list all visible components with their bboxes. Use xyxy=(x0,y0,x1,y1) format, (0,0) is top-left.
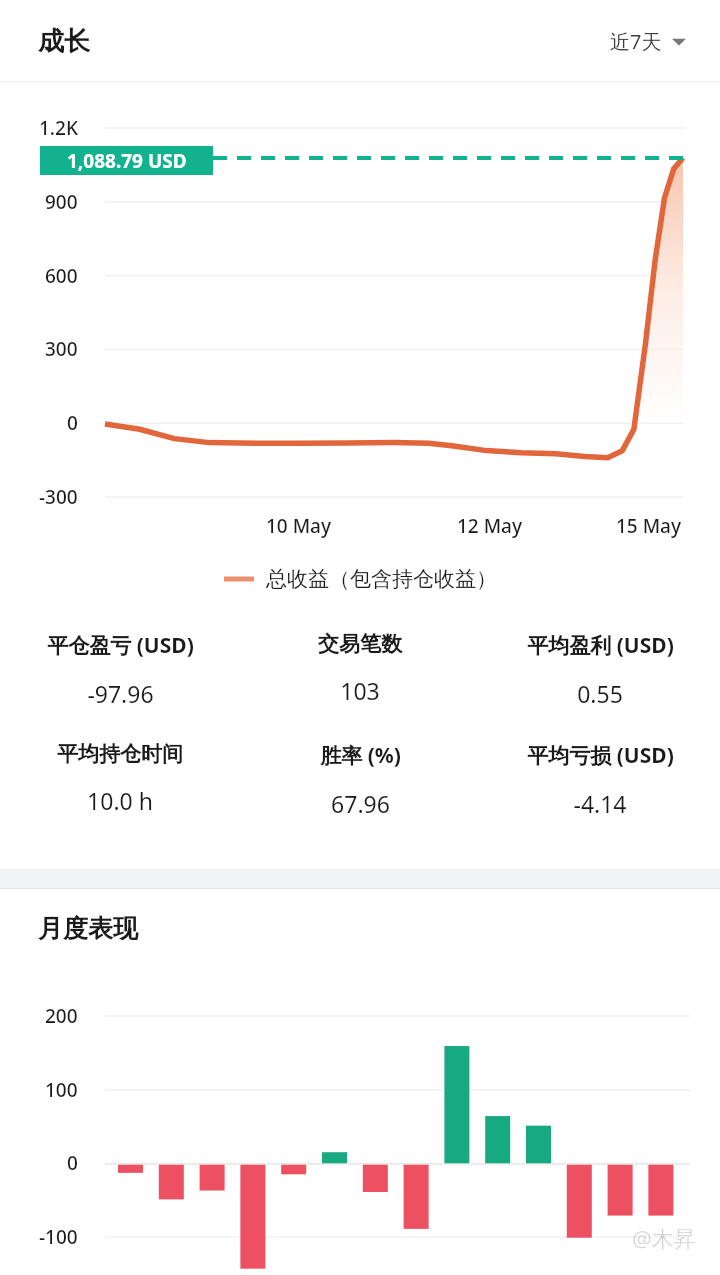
button[interactable]: 交易笔数 xyxy=(240,627,480,710)
staticText: 600 xyxy=(45,263,78,289)
staticText: 12 May xyxy=(457,513,523,539)
staticText: @木昇 xyxy=(632,1223,696,1253)
staticText: -100 xyxy=(39,1224,78,1250)
staticText: 月度表现 xyxy=(38,913,138,944)
staticText: 成长 xyxy=(38,25,90,58)
staticText: 103 xyxy=(340,675,380,706)
staticText: 平均持仓时间 xyxy=(57,741,183,767)
button[interactable]: 平仓盈亏 (USD) xyxy=(0,627,240,713)
staticText: 10 May xyxy=(266,513,332,539)
staticText: -97.96 xyxy=(87,678,154,709)
staticText: 0 xyxy=(67,410,78,436)
staticText: 1.2K xyxy=(39,115,78,141)
staticText: 300 xyxy=(45,336,78,362)
staticText: 100 xyxy=(45,1077,78,1103)
button[interactable]: 平均持仓时间 xyxy=(0,737,240,820)
staticText: 0 xyxy=(67,1150,78,1176)
staticText: 近7天 xyxy=(610,28,662,55)
staticText: 1,088.79 USD xyxy=(67,148,187,174)
staticText: 交易笔数 xyxy=(318,631,402,657)
button[interactable]: 近7天 xyxy=(606,22,690,61)
button[interactable]: 平均盈利 (USD) xyxy=(480,627,720,713)
staticText: 10.0 h xyxy=(87,785,153,816)
staticText: 总收益（包含持仓收益） xyxy=(266,566,497,592)
staticText: 900 xyxy=(45,189,78,215)
button[interactable]: 胜率 (%) xyxy=(240,737,480,823)
staticText: 平均盈利 (USD) xyxy=(527,631,674,660)
button[interactable]: 平均亏损 (USD) xyxy=(480,737,720,823)
staticText: 平仓盈亏 (USD) xyxy=(47,631,194,660)
staticText: 15 May xyxy=(616,513,682,539)
staticText: 胜率 (%) xyxy=(320,741,401,770)
staticText: 200 xyxy=(45,1003,78,1029)
staticText: -300 xyxy=(39,484,78,510)
staticText: 0.55 xyxy=(577,678,623,709)
staticText: 67.96 xyxy=(331,788,390,819)
staticText: -4.14 xyxy=(573,788,627,819)
staticText: 平均亏损 (USD) xyxy=(527,741,674,770)
